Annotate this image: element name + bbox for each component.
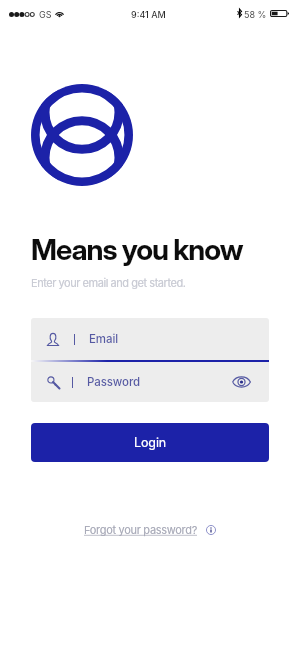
staticText: GS [39,9,52,20]
button[interactable]: Login [31,423,269,462]
button[interactable]: Password [31,362,269,402]
staticText: Password [87,375,141,389]
staticText: Email [89,332,118,346]
staticText: Forgot your password? [84,523,197,536]
staticText: Enter your email and get started. [31,276,186,289]
staticText: 58 % [244,9,267,20]
button[interactable]: Email [31,318,269,360]
button[interactable]: Show password [229,370,253,394]
button[interactable]: Forgot your password? [84,523,216,536]
staticText: Means you know [31,232,243,267]
staticText: 9:41 AM [131,9,166,20]
staticText: Login [134,435,167,450]
